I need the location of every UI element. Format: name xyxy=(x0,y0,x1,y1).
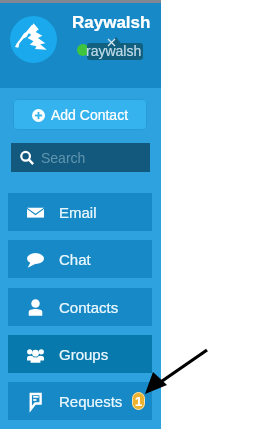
staticText: Contacts xyxy=(59,299,119,316)
staticText: Raywalsh xyxy=(72,13,151,32)
staticText: Requests xyxy=(59,393,123,410)
button[interactable]: Groups xyxy=(8,335,152,373)
button[interactable]: Email xyxy=(8,193,152,231)
staticText: 1 xyxy=(135,394,143,409)
other: Profile picture xyxy=(10,16,57,63)
staticText: Search xyxy=(41,150,86,166)
staticText: Chat xyxy=(59,251,91,268)
button[interactable]: Contacts xyxy=(8,288,152,326)
staticText: Groups xyxy=(59,346,109,363)
staticText: Email xyxy=(59,204,97,221)
button[interactable]: Search xyxy=(11,143,150,172)
staticText: raywalsh xyxy=(86,43,142,59)
button[interactable]: Requests xyxy=(8,382,152,420)
staticText: Add Contact xyxy=(51,107,129,123)
button[interactable]: Add Contact xyxy=(13,99,147,130)
button[interactable]: Chat xyxy=(8,240,152,278)
